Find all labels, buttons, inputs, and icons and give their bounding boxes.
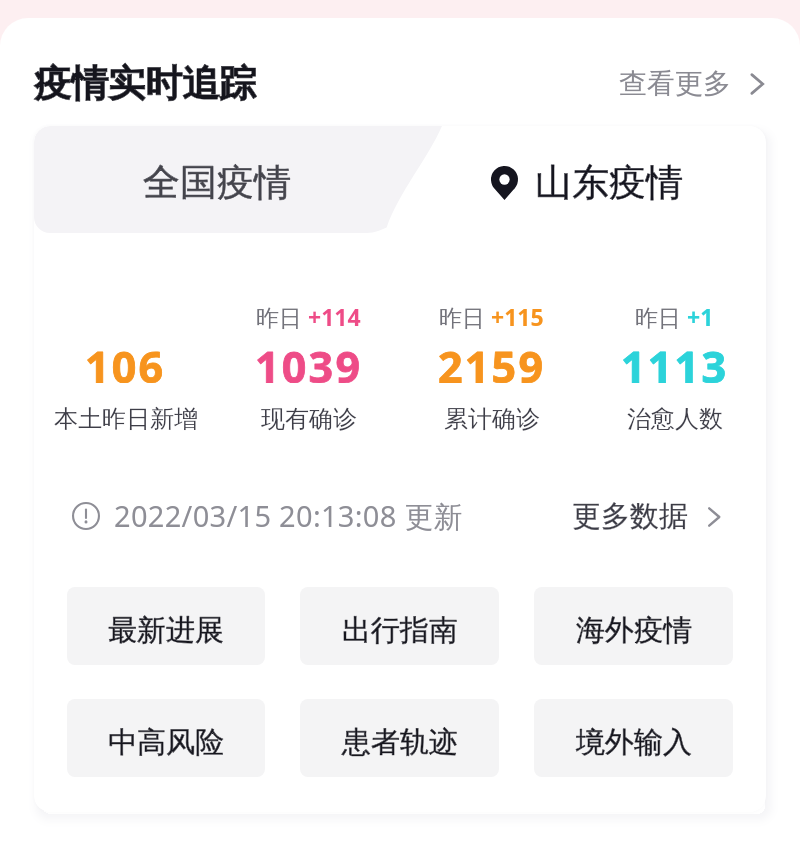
staticText: 治愈人数 [627,404,723,434]
staticText: 106 [85,337,166,383]
staticText: 本土昨日新增 [54,404,198,434]
staticText: 全国疫情 [143,159,291,206]
staticText: 1039 [255,337,363,383]
button[interactable]: 出行指南 [300,587,499,665]
staticText: 1113 [621,337,729,383]
staticText: 最新进展 [108,612,224,649]
button[interactable]: 最新进展 [67,587,265,665]
staticText: 中高风险 [108,724,224,761]
staticText: 查看更多 [619,66,731,101]
staticText: 昨日 +115 [439,301,544,332]
staticText: 累计确诊 [444,404,540,434]
staticText: 出行指南 [342,612,458,649]
staticText: 中高风险 [108,724,224,761]
button[interactable]: 中高风险 [67,699,265,777]
staticText: 更多数据 [572,498,688,535]
staticText: 患者轨迹 [342,724,458,761]
staticText: 2159 [438,337,546,383]
staticText: 最新进展 [108,612,224,649]
staticText: 昨日 +1 [635,301,714,332]
button[interactable]: 昨日 +114 [217,296,400,436]
button[interactable]: 海外疫情 [534,587,733,665]
staticText: 山东疫情 [535,159,683,206]
staticText: 1039 [255,337,363,383]
staticText: 海外疫情 [576,612,692,649]
staticText: 山东疫情 [535,159,683,206]
staticText: 106 [85,337,166,383]
staticText: 1113 [621,337,729,383]
staticText: 疫情实时追踪 [34,60,256,107]
staticText: 境外输入 [576,724,692,761]
staticText: 出行指南 [342,612,458,649]
staticText: 境外输入 [576,724,692,761]
staticText: 2159 [438,337,546,383]
button[interactable]: 全国疫情 [34,126,400,233]
other: View more [744,71,770,97]
button[interactable]: 昨日 +115 [400,296,583,436]
staticText: 2022/03/15 20:13:08 更新 [114,496,464,536]
button[interactable]: 境外输入 [534,699,733,777]
button[interactable]: 106 [34,296,217,436]
button[interactable]: 查看更多 [619,66,770,101]
button[interactable]: 更多数据 [572,498,726,535]
button[interactable]: 山东疫情 [400,126,766,233]
other: More data [702,505,726,529]
staticText: 全国疫情 [143,159,291,206]
staticText: 疫情实时追踪 [34,60,256,107]
staticText: 海外疫情 [576,612,692,649]
staticText: 患者轨迹 [342,724,458,761]
button[interactable]: 昨日 +1 [583,296,766,436]
staticText: 昨日 +114 [256,301,361,332]
button[interactable]: 患者轨迹 [300,699,499,777]
staticText: 更多数据 [572,498,688,535]
staticText: 现有确诊 [261,404,357,434]
